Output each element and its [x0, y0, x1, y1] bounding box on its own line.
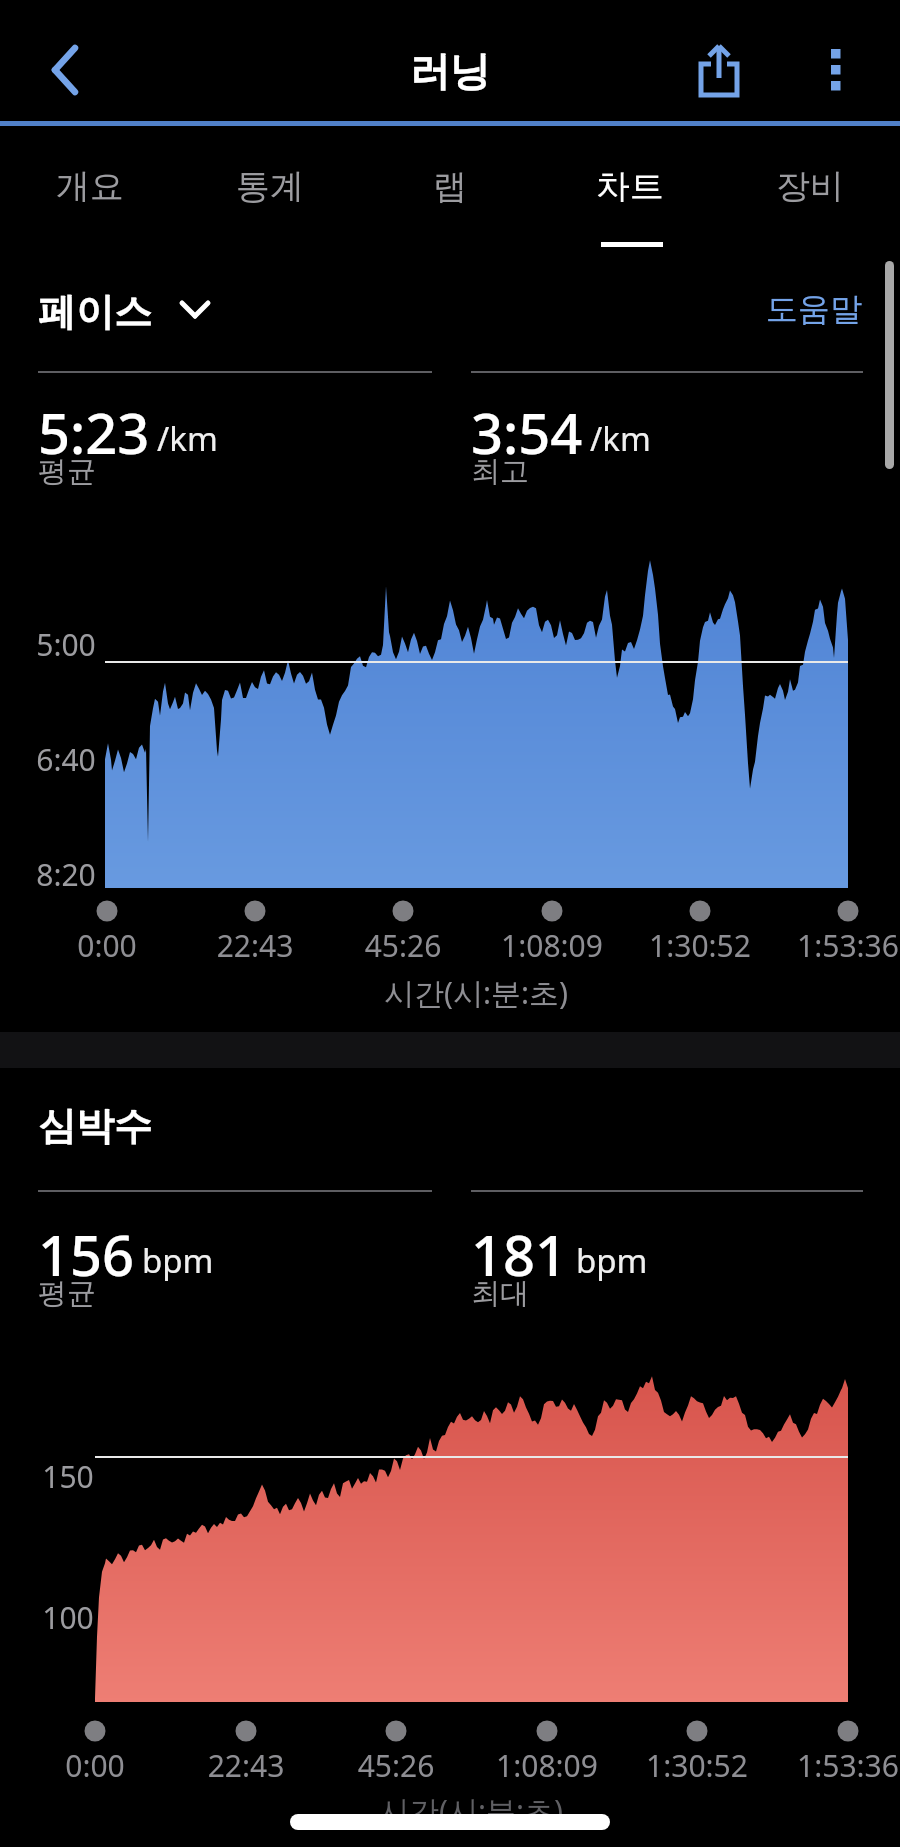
staticText: 통계: [236, 165, 304, 208]
staticText: 1:30:52: [622, 1745, 772, 1786]
staticText: 1:08:09: [472, 1745, 622, 1786]
button[interactable]: 장비: [720, 140, 900, 232]
button[interactable]: 통계: [180, 140, 360, 232]
staticText: 개요: [56, 165, 124, 208]
staticText: 차트: [596, 165, 664, 208]
staticText: 5:23: [38, 394, 150, 470]
staticText: 시간(시:분:초): [326, 972, 626, 1013]
staticText: /km: [590, 416, 651, 461]
staticText: /km: [157, 416, 218, 461]
staticText: 1:53:36: [773, 925, 900, 966]
staticText: 8:20: [36, 854, 96, 895]
button[interactable]: 개요: [0, 140, 180, 232]
staticText: 최고: [471, 453, 529, 490]
staticText: 181: [471, 1216, 568, 1292]
staticText: 심박수: [38, 1102, 152, 1150]
staticText: bpm: [576, 1238, 648, 1283]
button[interactable]: 도움말: [740, 284, 870, 334]
button[interactable]: 랩: [360, 140, 540, 232]
staticText: 0:00: [20, 1745, 170, 1786]
staticText: 6:40: [36, 739, 96, 780]
staticText: 1:08:09: [477, 925, 627, 966]
staticText: 0:00: [32, 925, 182, 966]
staticText: 22:43: [171, 1745, 321, 1786]
staticText: 150: [40, 1456, 96, 1497]
staticText: 평균: [38, 453, 96, 490]
staticText: bpm: [142, 1238, 214, 1283]
button[interactable]: 차트: [540, 140, 720, 232]
staticText: 페이스: [38, 288, 152, 336]
staticText: 평균: [38, 1275, 96, 1312]
staticText: 5:00: [36, 624, 96, 665]
staticText: 156: [38, 1216, 135, 1292]
staticText: 100: [40, 1597, 96, 1638]
button[interactable]: [806, 34, 866, 106]
button[interactable]: [684, 34, 754, 106]
staticText: 45:26: [328, 925, 478, 966]
staticText: 도움말: [766, 289, 862, 329]
staticText: 3:54: [471, 394, 583, 470]
staticText: 시간(시:분:초): [321, 1790, 621, 1831]
staticText: 랩: [433, 165, 467, 208]
staticText: 1:53:36: [773, 1745, 900, 1786]
staticText: 최대: [471, 1275, 529, 1312]
button[interactable]: [30, 38, 100, 104]
staticText: 45:26: [321, 1745, 471, 1786]
staticText: 장비: [776, 165, 844, 208]
staticText: 1:30:52: [625, 925, 775, 966]
staticText: 22:43: [180, 925, 330, 966]
staticText: 러닝: [410, 46, 490, 96]
